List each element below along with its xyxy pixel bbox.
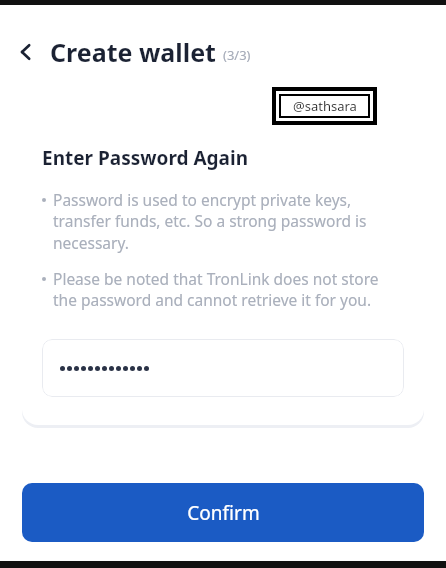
staticText: Password is used to encrypt private keys…: [53, 189, 406, 254]
staticText: Enter Password Again: [42, 145, 249, 171]
button[interactable]: [42, 339, 404, 397]
staticText: Please be noted that TronLink does not s…: [53, 268, 406, 311]
staticText: Create wallet: [50, 35, 216, 69]
button[interactable]: Confirm: [22, 483, 424, 542]
staticText: @sathsara: [293, 97, 357, 115]
staticText: (3/3): [223, 46, 251, 64]
staticText: Confirm: [187, 500, 260, 526]
button[interactable]: Back: [8, 34, 44, 70]
